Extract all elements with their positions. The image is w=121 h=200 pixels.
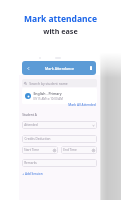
button[interactable]: Back: [22, 61, 34, 75]
staticText: Mark Attendance: [45, 66, 74, 71]
staticText: English - Primary: [33, 91, 62, 96]
staticText: End Time: [63, 148, 77, 152]
button[interactable]: End Time: [63, 146, 95, 154]
staticText: 09:15 AM to 10:00 AM: [33, 97, 63, 101]
staticText: + Add Session: [22, 172, 43, 176]
button[interactable]: Credits Deduction: [24, 135, 95, 143]
staticText: Search by student name: [29, 81, 68, 86]
button[interactable]: Filter: [86, 61, 96, 75]
button[interactable]: Search by student name: [24, 79, 95, 87]
button[interactable]: Mark Attendance: [22, 61, 96, 75]
staticText: Mark All Attended: [68, 103, 96, 107]
button[interactable]: Start Time: [24, 146, 56, 154]
staticText: Mark attendance: [24, 13, 97, 25]
button[interactable]: + Add Session: [22, 172, 43, 176]
staticText: Credits Deduction: [24, 137, 51, 141]
staticText: with ease: [43, 26, 78, 36]
button[interactable]: Remarks: [24, 159, 95, 167]
staticText: Start Time: [24, 148, 39, 152]
button[interactable]: Mark All Attended: [68, 103, 96, 107]
button[interactable]: English - Primary: [22, 88, 97, 104]
staticText: Remarks: [24, 161, 37, 165]
staticText: Student A: [22, 113, 37, 117]
staticText: Attended: [24, 123, 38, 127]
button[interactable]: Attended: [24, 121, 95, 129]
